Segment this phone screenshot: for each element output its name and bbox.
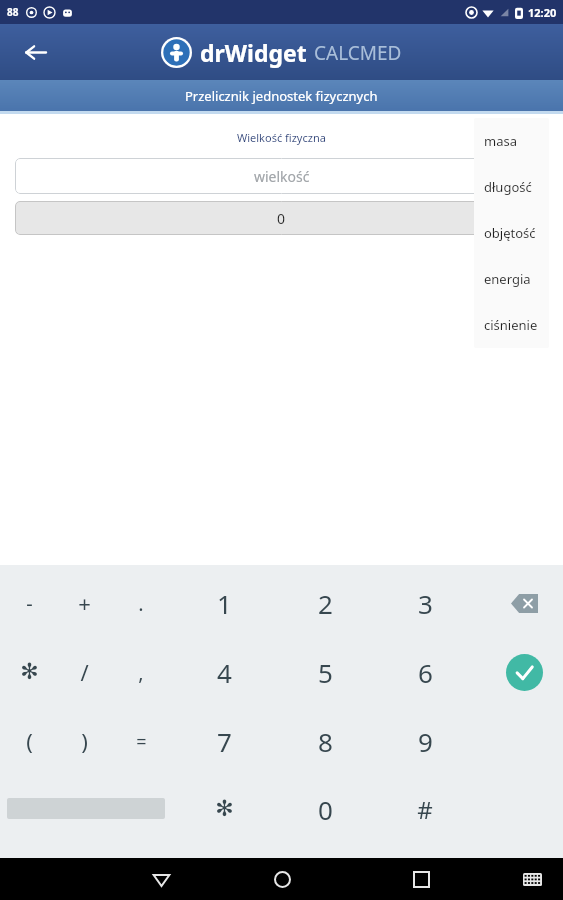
staticText: . xyxy=(138,590,144,617)
button[interactable]: 0 xyxy=(297,781,353,837)
staticText: długość xyxy=(484,178,532,196)
button[interactable]: # xyxy=(397,781,453,837)
button[interactable]: 6 xyxy=(397,644,453,700)
staticText: 0 xyxy=(318,792,333,827)
button[interactable]: = xyxy=(113,713,169,769)
staticText: / xyxy=(80,657,89,687)
staticText: 1 xyxy=(217,586,232,621)
staticText: 9 xyxy=(418,724,433,759)
button[interactable]: ( xyxy=(1,713,57,769)
staticText: drWidget xyxy=(200,37,307,68)
button[interactable]: + xyxy=(56,575,112,631)
staticText: masa xyxy=(484,132,517,150)
staticText: + xyxy=(78,588,91,618)
staticText: Przelicznik jednostek fizycznych xyxy=(185,87,378,105)
button[interactable]: długość xyxy=(474,164,549,210)
button[interactable]: 5 xyxy=(297,644,353,700)
button[interactable]: 0 xyxy=(15,201,548,235)
button[interactable]: , xyxy=(113,644,169,700)
button[interactable]: Backspace xyxy=(496,575,552,631)
staticText: 4 xyxy=(217,655,232,690)
staticText: ciśnienie xyxy=(484,316,538,334)
button[interactable]: 8 xyxy=(297,713,353,769)
staticText: energia xyxy=(484,270,531,288)
staticText: # xyxy=(417,793,433,826)
button[interactable]: energia xyxy=(474,256,549,302)
staticText: 0 xyxy=(277,209,286,228)
staticText: ✻ xyxy=(20,659,39,685)
staticText: - xyxy=(26,590,33,617)
staticText: 3 xyxy=(418,586,433,621)
button[interactable]: 7 xyxy=(196,713,252,769)
button[interactable]: masa xyxy=(474,118,549,164)
button[interactable]: Home xyxy=(261,858,303,900)
button[interactable]: Switch keyboard xyxy=(515,862,549,896)
button[interactable]: 2 xyxy=(297,575,353,631)
staticText: CALCMED xyxy=(314,40,402,66)
button[interactable]: ciśnienie xyxy=(474,302,549,348)
button[interactable]: ✻ xyxy=(1,644,57,700)
button[interactable]: Clear text xyxy=(511,161,541,191)
button[interactable]: - xyxy=(1,575,57,631)
staticText: ( xyxy=(26,726,33,756)
staticText: , xyxy=(138,659,144,686)
staticText: 88 xyxy=(7,5,19,19)
button[interactable]: ) xyxy=(56,713,112,769)
button[interactable]: / xyxy=(56,644,112,700)
staticText: 7 xyxy=(217,724,232,759)
staticText: 12:20 xyxy=(528,5,557,20)
staticText: Wielkość fizyczna xyxy=(237,130,326,145)
staticText: 8 xyxy=(318,724,333,759)
staticText: ✻ xyxy=(215,796,234,822)
button[interactable]: 9 xyxy=(397,713,453,769)
button[interactable]: wielkość xyxy=(15,158,548,194)
staticText: 6 xyxy=(418,655,433,690)
staticText: 2 xyxy=(318,586,333,621)
button[interactable]: Recent apps xyxy=(400,858,442,900)
staticText: objętość xyxy=(484,224,536,242)
button[interactable]: 3 xyxy=(397,575,453,631)
button[interactable]: Back xyxy=(11,28,59,76)
staticText: wielkość xyxy=(254,167,310,186)
staticText: = xyxy=(136,729,147,754)
button[interactable]: . xyxy=(113,575,169,631)
button[interactable]: objętość xyxy=(474,210,549,256)
staticText: 5 xyxy=(318,655,333,690)
button[interactable]: 4 xyxy=(196,644,252,700)
button[interactable]: Back xyxy=(140,858,182,900)
button[interactable]: Confirm xyxy=(496,644,552,700)
staticText: ) xyxy=(81,726,88,756)
button[interactable]: 1 xyxy=(196,575,252,631)
button[interactable]: ✻ xyxy=(196,781,252,837)
